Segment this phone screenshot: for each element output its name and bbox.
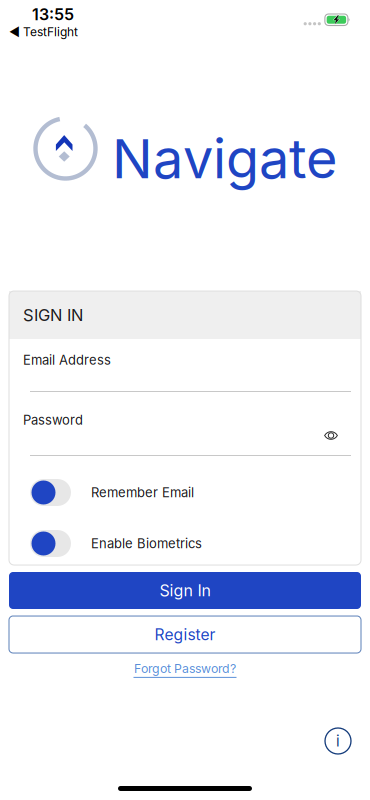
staticText: Email Address bbox=[23, 352, 111, 368]
button[interactable]: Forgot Password? bbox=[133, 661, 236, 678]
staticText: 13:55 bbox=[32, 5, 74, 24]
staticText: Enable Biometrics bbox=[91, 536, 202, 551]
button[interactable]: Information bbox=[325, 728, 351, 754]
button[interactable]: Sign In bbox=[9, 572, 361, 609]
staticText: Register bbox=[154, 625, 215, 644]
staticText: i bbox=[336, 732, 340, 750]
staticText: Password bbox=[23, 412, 83, 428]
staticText: Navigate bbox=[112, 126, 337, 191]
button[interactable]: Remember Email bbox=[9, 467, 361, 518]
staticText: SIGN IN bbox=[23, 305, 83, 325]
staticText: ◀ TestFlight bbox=[9, 25, 78, 39]
staticText: Sign In bbox=[159, 581, 210, 600]
staticText: Forgot Password? bbox=[134, 661, 236, 676]
staticText: Remember Email bbox=[91, 485, 194, 500]
button[interactable]: Register bbox=[9, 616, 361, 653]
button[interactable]: Show password bbox=[324, 430, 361, 441]
button[interactable]: Enable Biometrics bbox=[9, 518, 361, 569]
